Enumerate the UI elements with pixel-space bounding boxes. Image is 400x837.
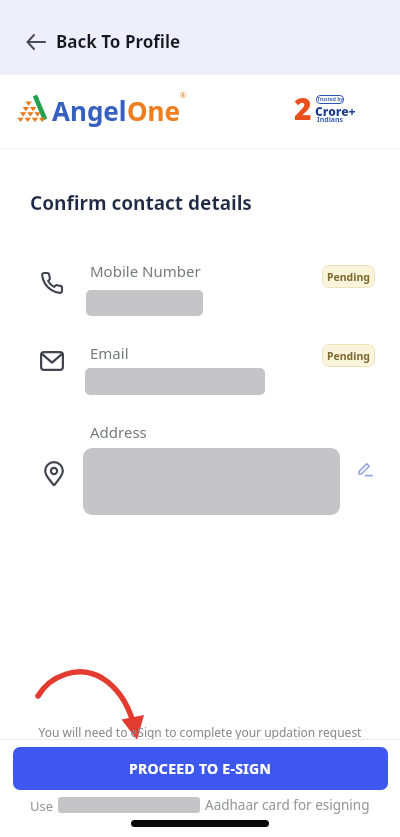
staticText: Angel xyxy=(52,93,127,128)
staticText: You will need to eSign to complete your … xyxy=(0,724,400,740)
staticText: 2 xyxy=(294,88,312,122)
staticText: Address xyxy=(90,422,147,442)
staticText: Use xyxy=(30,797,54,815)
staticText: Back To Profile xyxy=(56,30,181,53)
staticText: PROCEED TO E-SIGN xyxy=(129,759,272,778)
staticText: One xyxy=(127,93,180,128)
staticText: Aadhaar card for esigning xyxy=(205,796,370,814)
staticText: Pending xyxy=(327,270,370,284)
button[interactable]: Pending xyxy=(322,265,375,288)
staticText: Pending xyxy=(327,349,370,363)
staticText: Crore+ xyxy=(315,103,356,119)
button[interactable]: Pending xyxy=(322,344,375,367)
staticText: Indians xyxy=(317,115,344,125)
staticText: ® xyxy=(180,91,186,101)
staticText: Trusted by xyxy=(317,96,344,103)
button[interactable]: PROCEED TO E-SIGN xyxy=(13,747,388,790)
staticText: Email xyxy=(90,343,129,363)
button[interactable]: Back To Profile xyxy=(26,8,400,75)
staticText: Mobile Number xyxy=(90,261,201,281)
button[interactable] xyxy=(356,460,376,480)
staticText: Confirm contact details xyxy=(30,190,252,216)
